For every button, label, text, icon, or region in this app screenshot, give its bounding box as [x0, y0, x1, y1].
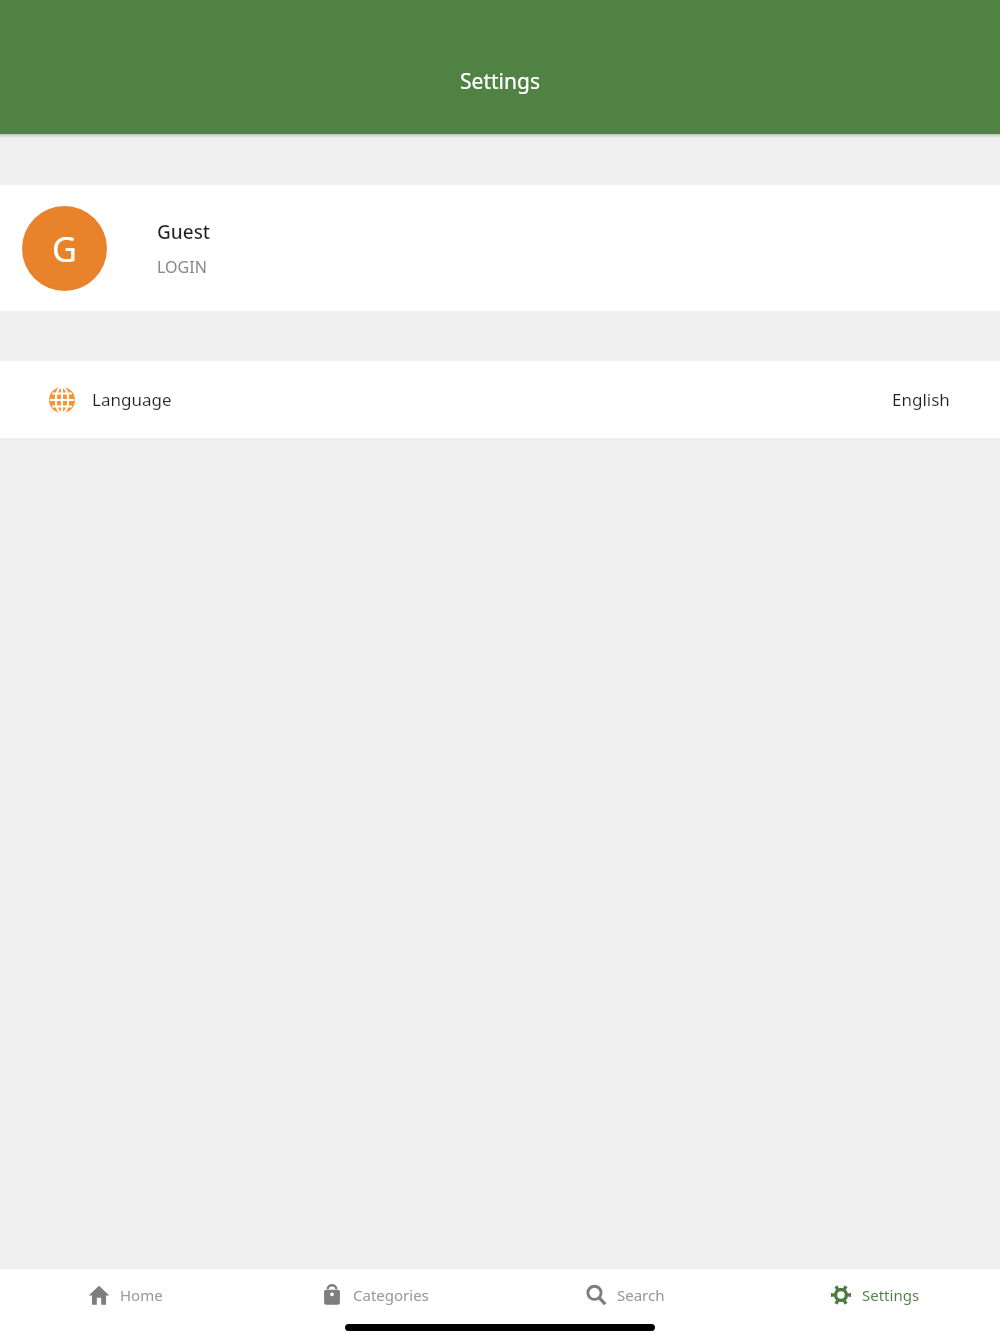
- staticText: English: [892, 388, 950, 411]
- button[interactable]: G: [0, 185, 1000, 311]
- staticText: Settings: [862, 1285, 920, 1305]
- staticText: G: [52, 226, 77, 272]
- button[interactable]: Language: [0, 361, 1000, 438]
- button[interactable]: Home: [0, 1269, 250, 1321]
- staticText: Settings: [0, 67, 1000, 96]
- staticText: Search: [617, 1285, 665, 1305]
- staticText: LOGIN: [157, 256, 207, 278]
- staticText: Guest: [157, 219, 211, 245]
- button[interactable]: Settings: [750, 1269, 1000, 1321]
- button[interactable]: Search: [500, 1269, 750, 1321]
- button[interactable]: Categories: [250, 1269, 500, 1321]
- staticText: Categories: [353, 1285, 429, 1305]
- staticText: Language: [92, 388, 172, 411]
- staticText: Home: [120, 1285, 163, 1305]
